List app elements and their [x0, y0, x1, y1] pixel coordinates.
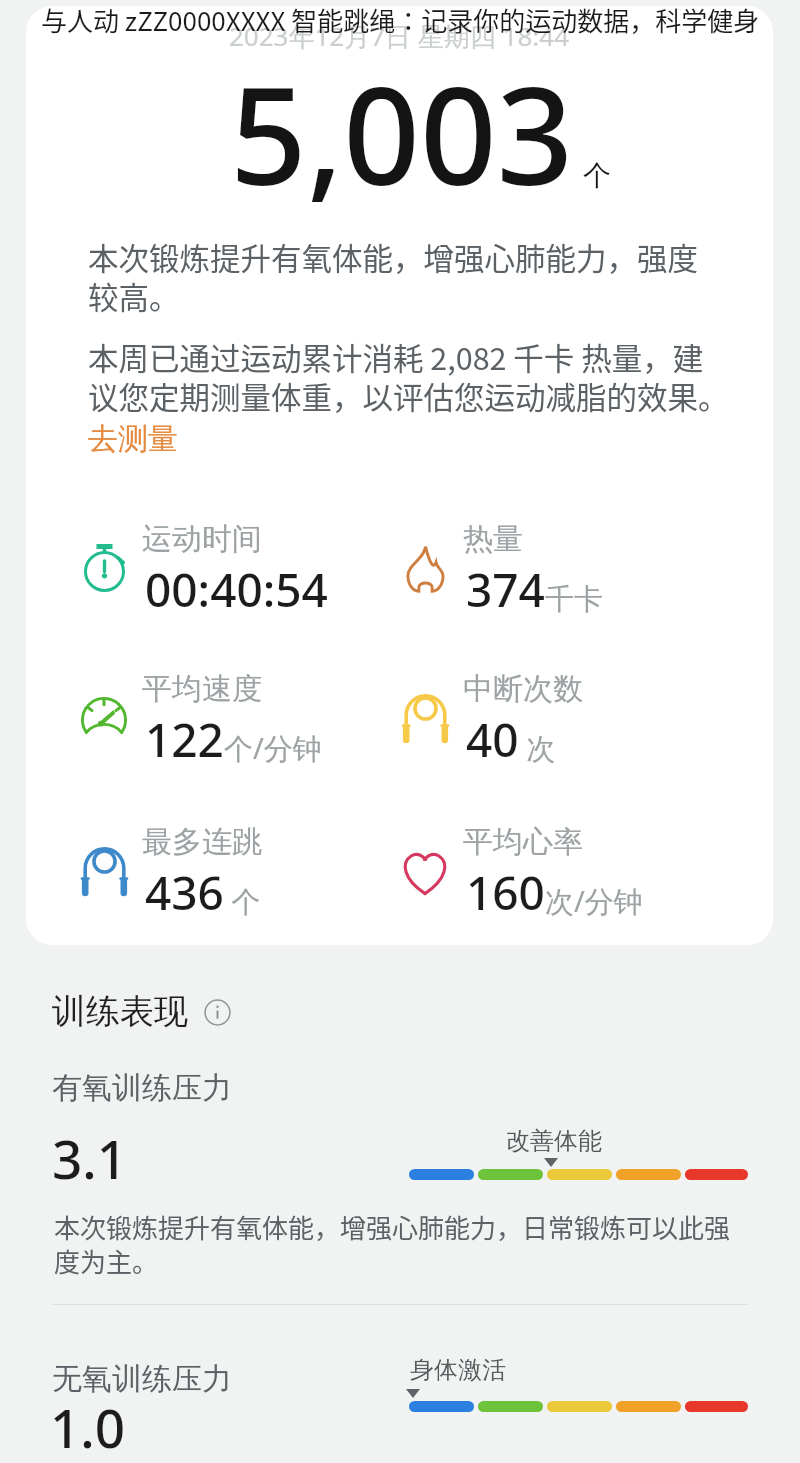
button[interactable]: 热量 [347, 520, 667, 621]
staticText: 436 [145, 861, 224, 924]
staticText: 平均速度 [142, 670, 262, 708]
button[interactable]: 最多连跳 [26, 823, 346, 924]
button[interactable]: 中断次数 [347, 670, 667, 771]
staticText: 本次锻炼提升有氧体能，增强心肺能力，日常锻炼可以此强度为主。 [54, 1208, 744, 1279]
button[interactable]: 运动时间 [26, 520, 346, 621]
staticText: 运动时间 [142, 520, 262, 558]
staticText: 训练表现 [52, 990, 188, 1033]
staticText: 个/分钟 [224, 728, 322, 768]
staticText: 1.0 [50, 1391, 126, 1463]
button[interactable]: 平均心率 [347, 823, 667, 924]
button[interactable]: 去测量 [82, 414, 184, 464]
staticText: 次 [519, 728, 556, 768]
staticText: 本次锻炼提升有氧体能，增强心肺能力，强度较高。 [88, 235, 713, 318]
staticText: 有氧训练压力 [52, 1069, 232, 1107]
staticText: 无氧训练压力 [52, 1360, 232, 1398]
button[interactable]: 平均速度 [26, 670, 346, 771]
staticText: 160 [466, 861, 545, 924]
staticText: 热量 [463, 520, 523, 558]
staticText: 次/分钟 [545, 881, 643, 921]
staticText: 40 [466, 708, 519, 771]
staticText: 本周已通过运动累计消耗 2,082 千卡 热量，建议您定期测量体重，以评估您运动… [88, 335, 731, 418]
staticText: 改善体能 [506, 1126, 602, 1156]
staticText: 平均心率 [463, 823, 583, 861]
staticText: 374 [466, 558, 545, 621]
staticText: 个 [224, 881, 261, 921]
staticText: 去测量 [88, 420, 178, 458]
button[interactable]: 训练表现说明 [202, 997, 232, 1027]
staticText: 2023年12月7日 星期四 18:44 [229, 18, 570, 54]
staticText: 3.1 [52, 1122, 128, 1194]
staticText: 中断次数 [463, 670, 583, 708]
staticText: 00:40:54 [145, 558, 328, 621]
staticText: 最多连跳 [142, 823, 262, 861]
staticText: 身体激活 [410, 1355, 506, 1385]
staticText: 5,003 [230, 42, 574, 225]
staticText: 与人动 zZZ0000XXXX 智能跳绳：记录你的运动数据，科学健身 [41, 1, 760, 39]
staticText: 个 [583, 158, 611, 193]
staticText: 千卡 [545, 581, 603, 618]
staticText: 122 [145, 708, 224, 771]
